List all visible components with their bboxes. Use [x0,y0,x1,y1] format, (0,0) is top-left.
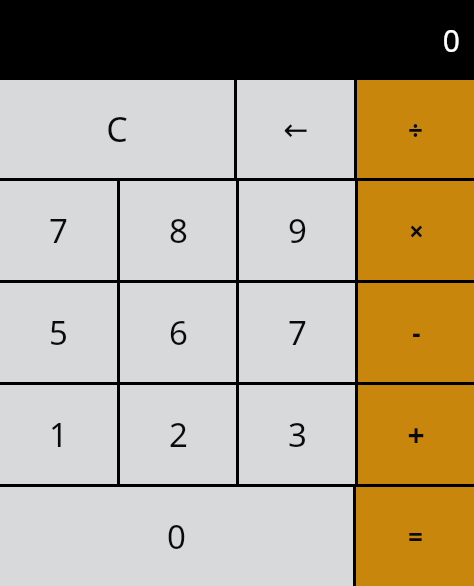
button[interactable]: 1 [0,385,117,484]
button[interactable]: 7 [0,181,117,280]
button[interactable]: C [0,80,234,178]
button[interactable]: Backspace [237,80,354,178]
staticText: + [407,414,425,455]
button[interactable]: 8 [120,181,236,280]
staticText: = [408,519,423,554]
button[interactable]: 0 [0,487,353,586]
staticText: 5 [49,310,68,355]
button[interactable]: 6 [120,283,236,382]
staticText: ← [283,112,309,147]
button[interactable]: × [358,181,474,280]
staticText: 8 [169,208,188,253]
button[interactable]: 9 [239,181,355,280]
button[interactable]: - [358,283,474,382]
button[interactable]: 3 [239,385,355,484]
button[interactable]: = [356,487,474,586]
staticText: 7 [288,310,307,355]
staticText: 0 [442,20,460,61]
button[interactable]: + [358,385,474,484]
staticText: 3 [288,412,307,457]
staticText: 6 [169,310,188,355]
staticText: 2 [169,412,188,457]
staticText: - [412,315,421,350]
staticText: ÷ [408,112,423,147]
staticText: 7 [49,208,68,253]
staticText: 0 [167,514,186,559]
button[interactable]: ÷ [357,80,474,178]
button[interactable]: 2 [120,385,236,484]
staticText: × [409,213,424,248]
button[interactable]: 7 [239,283,355,382]
button[interactable]: 5 [0,283,117,382]
staticText: 9 [288,208,307,253]
staticText: 1 [49,412,68,457]
staticText: C [106,106,128,152]
